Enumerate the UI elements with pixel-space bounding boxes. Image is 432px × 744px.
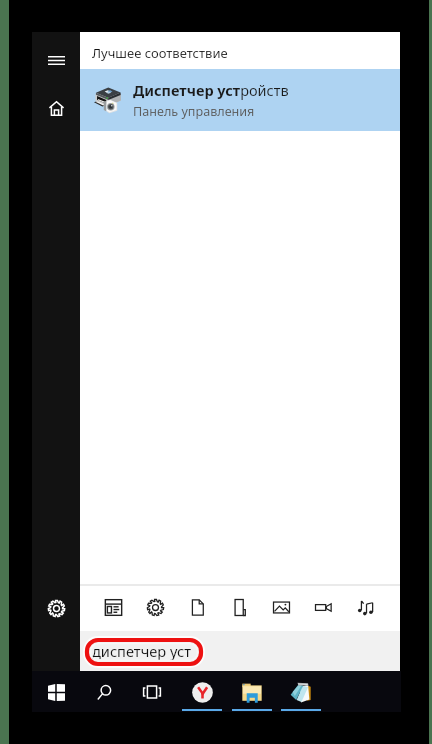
button[interactable]: Home [32, 84, 80, 132]
button[interactable]: Music [349, 591, 381, 623]
button[interactable]: Notepad [281, 672, 321, 712]
button[interactable]: Web [223, 591, 255, 623]
staticText: Диспетчер устройств [133, 80, 289, 100]
button[interactable]: Start [36, 672, 76, 712]
button[interactable]: Documents [181, 591, 213, 623]
button[interactable]: Диспетчер устройств [80, 69, 400, 131]
staticText: Лучшее соответствие [92, 44, 228, 62]
button[interactable]: Search [84, 672, 124, 712]
staticText: Панель управления [133, 103, 255, 120]
button[interactable]: Settings [32, 584, 80, 632]
button[interactable]: File Explorer [232, 672, 272, 712]
button[interactable]: Yandex Browser [182, 672, 222, 712]
button[interactable]: Menu [32, 36, 80, 84]
staticText: диспетчер уст [92, 641, 191, 661]
button[interactable]: Photos [265, 591, 297, 623]
button[interactable]: Apps [97, 591, 129, 623]
button[interactable]: Settings [139, 591, 171, 623]
button[interactable]: Task View [132, 672, 172, 712]
button[interactable]: диспетчер уст [80, 631, 400, 671]
button[interactable]: Video [307, 591, 339, 623]
